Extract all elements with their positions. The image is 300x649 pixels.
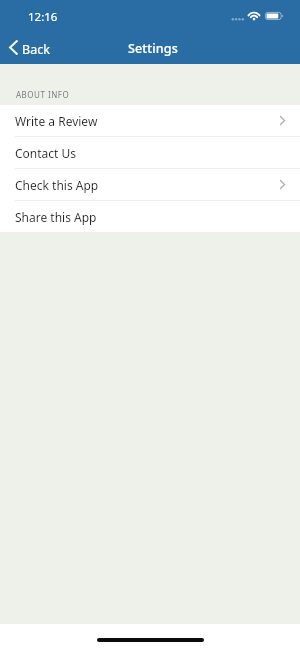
button[interactable]: Share this App: [0, 201, 300, 232]
other: Cellular signal: [231, 17, 244, 22]
staticText: Write a Review: [15, 113, 98, 129]
button[interactable]: Contact Us: [0, 137, 300, 169]
other: Wi-Fi: [248, 12, 260, 21]
staticText: Settings: [128, 40, 178, 57]
staticText: Back: [22, 41, 50, 58]
staticText: Share this App: [15, 209, 97, 225]
button[interactable]: Back: [0, 33, 60, 63]
button[interactable]: Write a Review: [0, 105, 300, 137]
staticText: 12:16: [28, 9, 58, 25]
button[interactable]: Check this App: [0, 169, 300, 201]
other: Back: [9, 40, 18, 55]
staticText: Check this App: [15, 177, 99, 193]
other: Battery: [265, 12, 285, 21]
staticText: Contact Us: [15, 145, 77, 161]
staticText: ABOUT INFO: [16, 89, 70, 100]
